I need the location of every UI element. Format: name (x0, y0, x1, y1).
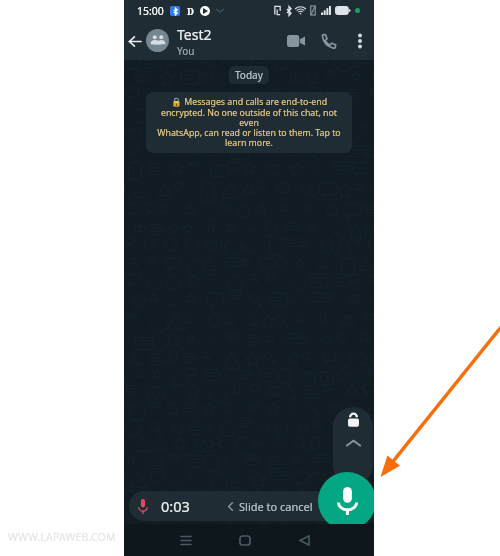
staticText: 🔒 Messages and calls are end-to-end encr… (150, 96, 348, 149)
button[interactable]: 0:03 (129, 491, 374, 521)
button[interactable]: Back (289, 525, 319, 555)
button[interactable]: Today (229, 66, 269, 84)
staticText: D (187, 5, 194, 17)
staticText: Test2 (177, 25, 212, 44)
button[interactable]: Voice call (315, 28, 341, 54)
staticText: WWW.LAPAWEB.COM (8, 530, 116, 544)
staticText: You (177, 44, 195, 58)
staticText: Today (235, 68, 263, 82)
button[interactable]: Group photo (146, 29, 169, 52)
button[interactable]: Record voice message (318, 472, 374, 525)
button[interactable]: Home (230, 525, 260, 555)
button[interactable]: 🔒 Messages and calls are end-to-end encr… (146, 92, 352, 153)
button[interactable]: More options (347, 28, 373, 54)
button[interactable]: Video call (283, 28, 309, 54)
button[interactable]: Lock recording (333, 407, 373, 485)
staticText: 15:00 (137, 4, 164, 18)
staticText: Slide to cancel (239, 499, 313, 514)
button[interactable]: Back (124, 30, 146, 52)
staticText: 0:03 (161, 496, 190, 516)
button[interactable]: Recent apps (171, 525, 201, 555)
